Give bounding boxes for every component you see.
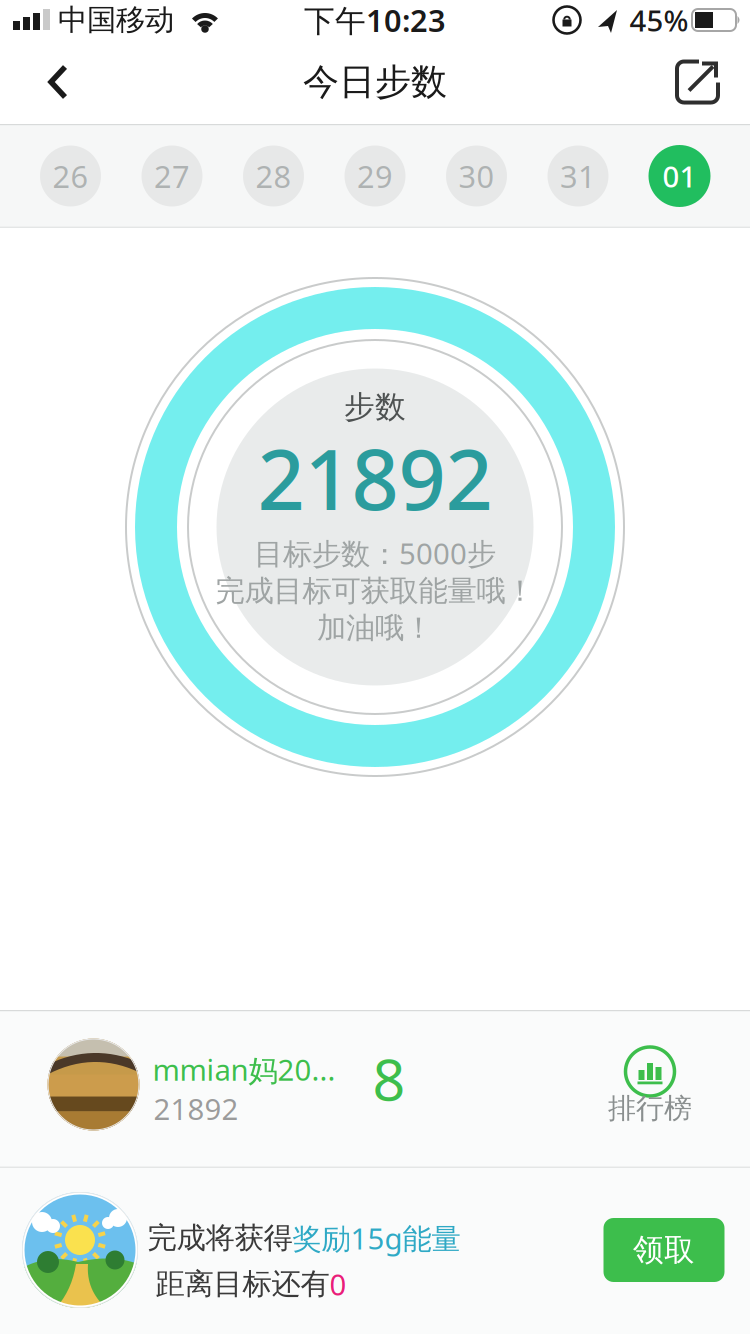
staticText: 21892 xyxy=(257,423,492,533)
staticText: 0 xyxy=(329,1264,346,1303)
staticText: 30 xyxy=(458,156,494,196)
staticText: 今日步数 xyxy=(303,60,447,104)
staticText: 26 xyxy=(52,156,88,196)
staticText: mmian妈20... xyxy=(152,1050,335,1089)
staticText: 完成目标可获取能量哦！ xyxy=(215,573,534,609)
staticText: 21892 xyxy=(153,1089,238,1128)
staticText: 中国移动 xyxy=(58,2,174,38)
staticText: 完成将获得 xyxy=(147,1220,292,1256)
staticText: 目标步数：5000步 xyxy=(254,533,496,572)
staticText: 29 xyxy=(357,156,393,196)
staticText: 45% xyxy=(629,0,688,39)
staticText: 加油哦！ xyxy=(317,610,433,646)
staticText: 下午10:23 xyxy=(304,0,446,40)
staticText: 奖励15g能量 xyxy=(292,1218,460,1257)
staticText: 31 xyxy=(560,156,596,196)
staticText: 28 xyxy=(255,156,291,196)
staticText: 步数 xyxy=(344,388,406,426)
staticText: 排行榜 xyxy=(608,1091,692,1126)
staticText: 01 xyxy=(662,156,696,195)
staticText: 27 xyxy=(154,156,190,196)
staticText: 距离目标还有 xyxy=(155,1266,329,1302)
staticText: 8 xyxy=(372,1040,405,1116)
staticText: 领取 xyxy=(633,1231,695,1269)
